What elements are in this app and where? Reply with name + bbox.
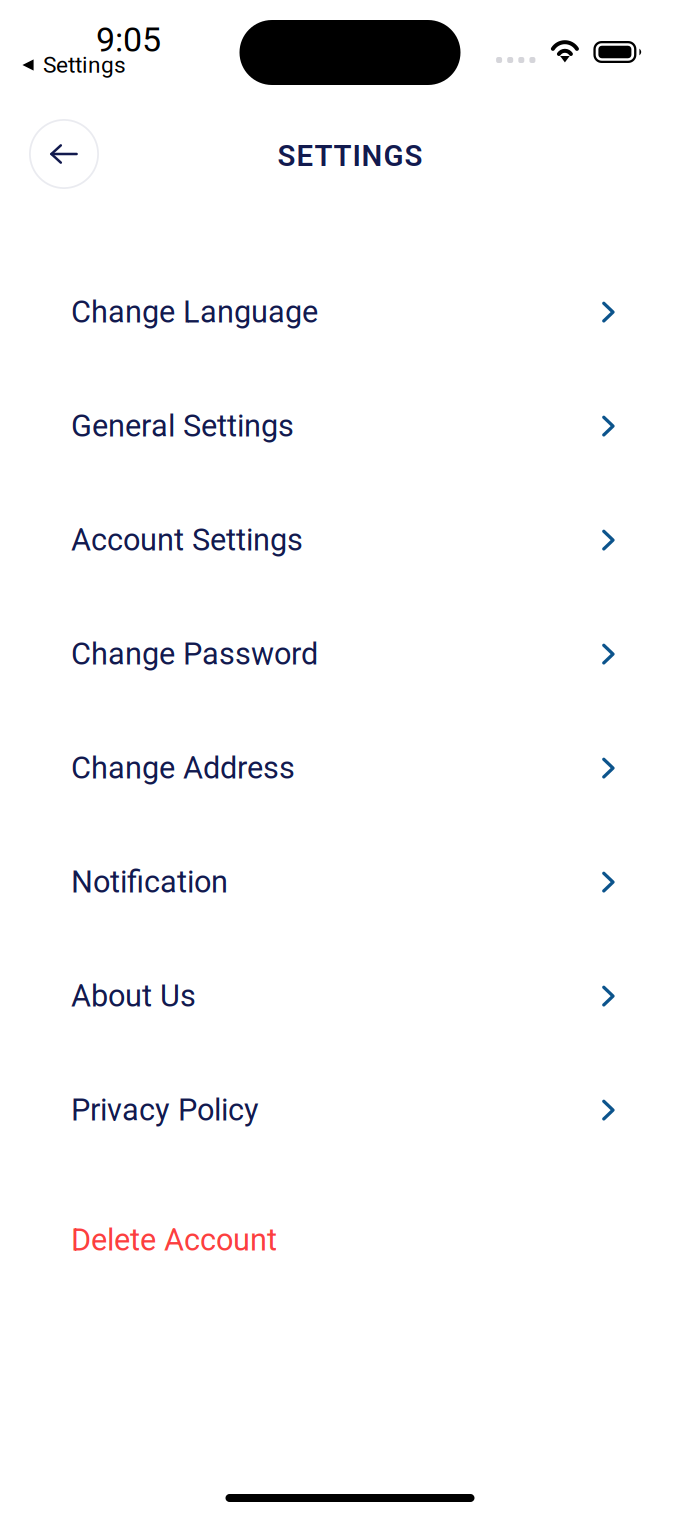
- button[interactable]: Delete Account: [0, 1167, 700, 1295]
- staticText: Privacy Policy: [71, 1092, 259, 1128]
- staticText: Change Language: [71, 294, 318, 330]
- staticText: Change Address: [71, 750, 295, 786]
- staticText: 9:05: [96, 20, 161, 60]
- button[interactable]: Notification: [0, 825, 700, 939]
- button[interactable]: Back: [29, 119, 99, 189]
- staticText: Notification: [71, 864, 228, 900]
- staticText: General Settings: [71, 408, 294, 444]
- staticText: Account Settings: [71, 522, 303, 558]
- staticText: Change Password: [71, 636, 318, 672]
- staticText: Settings: [43, 52, 126, 78]
- button[interactable]: Privacy Policy: [0, 1053, 700, 1167]
- staticText: Delete Account: [71, 1222, 277, 1258]
- button[interactable]: About Us: [0, 939, 700, 1053]
- button[interactable]: Account Settings: [0, 483, 700, 597]
- button[interactable]: Change Password: [0, 597, 700, 711]
- button[interactable]: Change Language: [0, 255, 700, 369]
- staticText: About Us: [71, 978, 196, 1014]
- button[interactable]: Change Address: [0, 711, 700, 825]
- button[interactable]: General Settings: [0, 369, 700, 483]
- staticText: SETTINGS: [277, 139, 422, 173]
